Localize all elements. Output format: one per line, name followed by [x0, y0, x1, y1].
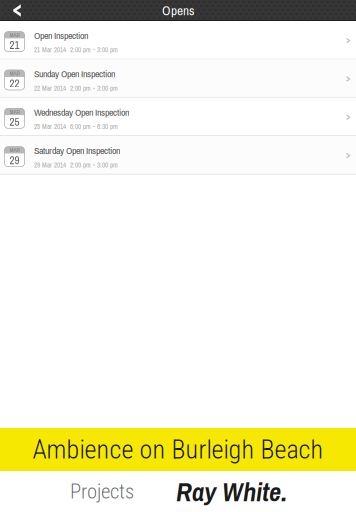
- staticText: Ambience on Burleigh Beach: [32, 434, 323, 465]
- staticText: 25: [9, 114, 19, 129]
- staticText: 29 Mar 2014 2:00 pm - 3:00 pm: [34, 160, 118, 169]
- staticText: 22: [9, 76, 19, 91]
- button[interactable]: Back: [0, 0, 34, 21]
- staticText: 29: [9, 153, 19, 167]
- staticText: Ray White.: [176, 473, 287, 509]
- button[interactable]: MAR: [0, 59, 356, 98]
- staticText: MAR: [9, 31, 19, 39]
- button[interactable]: MAR: [0, 21, 356, 59]
- staticText: 21 Mar 2014 2:00 pm - 3:00 pm: [34, 45, 118, 54]
- staticText: 21: [9, 38, 19, 52]
- button[interactable]: MAR: [0, 98, 356, 136]
- staticText: Sunday Open Inspection: [34, 67, 115, 80]
- staticText: Wednesday Open Inspection: [34, 105, 129, 119]
- staticText: Projects: [70, 479, 134, 504]
- staticText: Open Inspection: [34, 29, 88, 42]
- staticText: MAR: [9, 69, 19, 77]
- staticText: Opens: [162, 1, 194, 19]
- button[interactable]: MAR: [0, 136, 356, 174]
- staticText: MAR: [9, 146, 19, 154]
- staticText: Saturday Open Inspection: [34, 144, 120, 157]
- staticText: 25 Mar 2014 6:00 pm - 6:30 pm: [34, 122, 118, 131]
- staticText: MAR: [9, 108, 19, 116]
- staticText: 22 Mar 2014 2:00 pm - 3:00 pm: [34, 84, 118, 93]
